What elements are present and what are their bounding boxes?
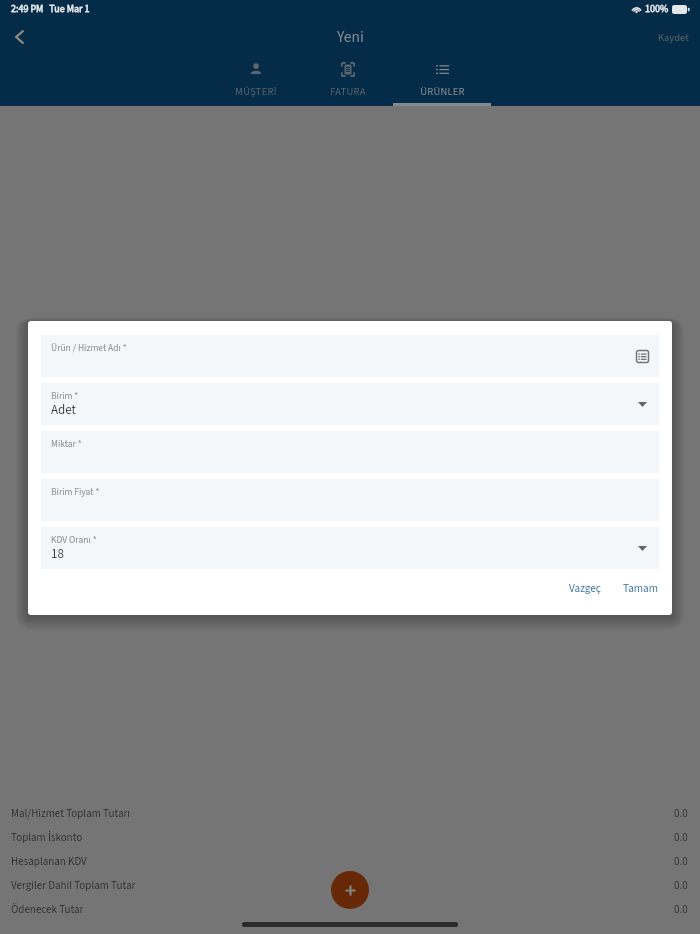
staticText: Yeni xyxy=(337,26,364,48)
button[interactable]: MÜŞTERİ xyxy=(209,56,303,106)
button[interactable]: Back xyxy=(0,18,38,56)
staticText: Birim Fiyat * xyxy=(51,485,100,499)
staticText: 0.0 xyxy=(674,902,688,918)
staticText: Birim * xyxy=(51,389,79,403)
staticText: ÜRÜNLER xyxy=(420,84,465,99)
button[interactable]: Birim Fiyat * xyxy=(41,479,659,521)
staticText: 100% xyxy=(645,2,669,16)
button[interactable]: Vazgeç xyxy=(561,573,609,605)
staticText: Ürün / Hizmet Adı * xyxy=(51,341,127,355)
staticText: Kaydet xyxy=(658,30,689,45)
button[interactable]: Hesaplanan KDV xyxy=(0,850,700,874)
button[interactable]: Birim * xyxy=(41,383,659,425)
staticText: Hesaplanan KDV xyxy=(11,854,87,870)
staticText: Ödenecek Tutar xyxy=(11,902,84,918)
staticText: Mal/Hizmet Toplam Tutarı xyxy=(11,806,130,822)
button[interactable]: Expand xyxy=(630,536,654,560)
staticText: 0.0 xyxy=(674,806,688,822)
button[interactable]: Tamam xyxy=(615,573,667,605)
button[interactable]: Select product xyxy=(630,344,654,368)
staticText: 2:49 PM Tue Mar 1 xyxy=(11,2,90,16)
button[interactable]: Miktar * xyxy=(41,431,659,473)
button[interactable]: KDV Oranı * xyxy=(41,527,659,569)
button[interactable]: Ödenecek Tutar xyxy=(0,898,700,922)
button[interactable]: FATURA xyxy=(301,56,395,106)
staticText: Toplam İskonto xyxy=(11,830,83,846)
button[interactable]: Mal/Hizmet Toplam Tutarı xyxy=(0,802,700,826)
staticText: 0.0 xyxy=(674,878,688,894)
staticText: MÜŞTERİ xyxy=(235,84,277,99)
button[interactable]: Ürün / Hizmet Adı * xyxy=(41,335,659,377)
button[interactable]: Expand xyxy=(630,392,654,416)
button[interactable]: ÜRÜNLER xyxy=(395,56,489,106)
staticText: 0.0 xyxy=(674,854,688,870)
staticText: Adet xyxy=(51,401,76,420)
staticText: 18 xyxy=(51,545,64,564)
staticText: Vazgeç xyxy=(569,581,601,597)
staticText: FATURA xyxy=(330,84,366,99)
staticText: Miktar * xyxy=(51,437,82,451)
button[interactable]: Kaydet xyxy=(647,21,700,54)
button[interactable]: Add xyxy=(331,871,369,909)
staticText: Vergiler Dahil Toplam Tutar xyxy=(11,878,136,894)
staticText: 0.0 xyxy=(674,830,688,846)
button[interactable]: Toplam İskonto xyxy=(0,826,700,850)
staticText: Tamam xyxy=(623,581,659,597)
staticText: KDV Oranı * xyxy=(51,533,97,547)
button[interactable]: Vergiler Dahil Toplam Tutar xyxy=(0,874,700,898)
